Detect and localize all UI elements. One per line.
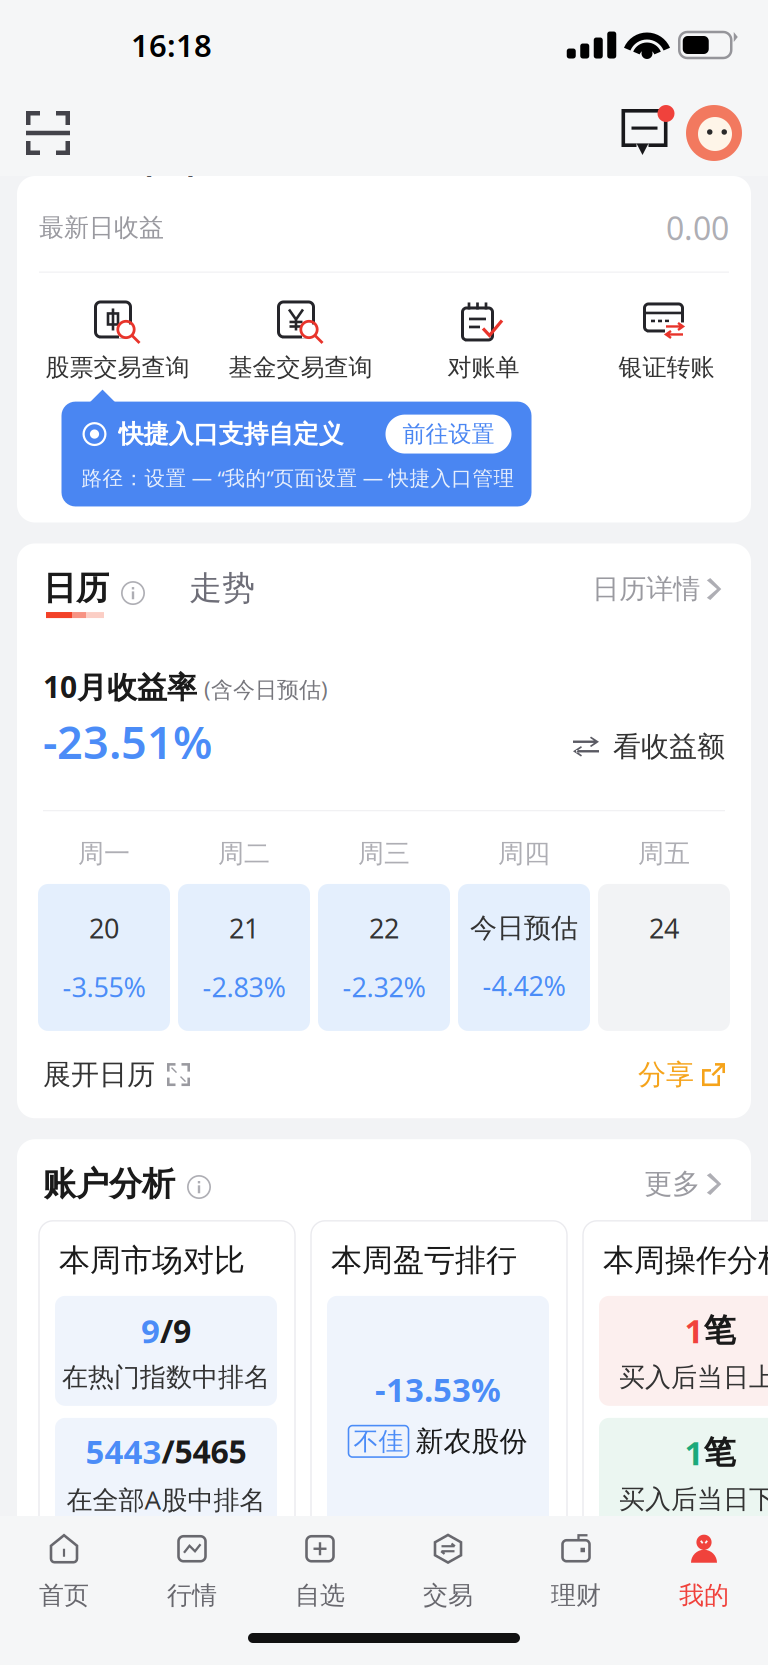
staticText: /5465	[161, 1429, 246, 1473]
staticText: 周一	[78, 837, 130, 870]
staticText: (含今日预估)	[204, 674, 328, 704]
button[interactable]: 首页	[0, 1528, 128, 1616]
staticText: 5443	[85, 1429, 161, 1474]
staticText: 笔	[703, 1432, 735, 1473]
staticText: 10月收益率	[43, 666, 197, 707]
staticText: 16:18	[131, 24, 212, 66]
staticText: 走势	[189, 567, 255, 609]
staticText: 理财	[551, 1580, 601, 1611]
staticText: 周三	[358, 837, 410, 870]
staticText: 基金交易查询	[228, 352, 372, 383]
button[interactable]: 21	[178, 884, 310, 1031]
button[interactable]: 对账单	[392, 295, 575, 389]
staticText: 展开日历	[43, 1057, 155, 1092]
staticText: 9	[141, 1308, 160, 1353]
button[interactable]: 银证转账	[575, 295, 758, 389]
staticText: 日历详情	[592, 572, 700, 606]
staticText: 周五	[638, 837, 690, 870]
button[interactable]: 看收益额	[573, 729, 725, 772]
staticText: /9	[160, 1309, 191, 1352]
staticText: 本周市场对比	[59, 1241, 245, 1280]
staticText: 0.00	[649, 126, 729, 181]
staticText: -23.51%	[43, 711, 212, 772]
staticText: 行情	[167, 1580, 217, 1611]
staticText: 快捷入口支持自定义	[118, 418, 343, 450]
staticText: 0.00	[666, 206, 729, 250]
staticText: 银证转账	[618, 352, 714, 383]
staticText: 买入后当日上涨	[619, 1361, 768, 1394]
staticText: 在热门指数中排名	[62, 1361, 270, 1394]
button[interactable]: 更多	[644, 1166, 725, 1202]
staticText: 分享	[638, 1057, 694, 1092]
button[interactable]: 基金交易查询	[209, 295, 392, 389]
staticText: 24	[649, 910, 679, 946]
staticText: 22	[369, 910, 399, 946]
staticText: 本周盈亏排行	[331, 1241, 517, 1280]
staticText: 更多	[644, 1166, 700, 1202]
button[interactable]: 24	[598, 884, 730, 1031]
staticText: 日历	[43, 567, 109, 609]
staticText: 看收益额	[613, 729, 725, 764]
staticText: 首页	[39, 1580, 89, 1611]
staticText: -13.53%	[375, 1367, 501, 1412]
staticText: 本周操作分析	[603, 1241, 768, 1280]
staticText: 前往设置	[402, 420, 494, 449]
staticText: 20	[89, 910, 119, 946]
staticText: 对账单	[447, 352, 519, 383]
button[interactable]: 交易	[384, 1528, 512, 1616]
staticText: 交易	[423, 1580, 473, 1611]
button[interactable]: 消息	[618, 103, 678, 163]
button[interactable]: 我的账户	[678, 103, 750, 163]
staticText: 1	[684, 1430, 703, 1475]
button[interactable]: 日历详情	[592, 572, 725, 618]
button[interactable]: 22	[318, 884, 450, 1031]
staticText: 自选	[295, 1580, 345, 1611]
button[interactable]: 前往设置	[385, 415, 511, 454]
button[interactable]: 我的	[640, 1528, 768, 1616]
staticText: 总资产(元)	[39, 135, 199, 181]
staticText: 21	[229, 910, 259, 946]
staticText: 新农股份	[415, 1424, 527, 1459]
staticText: 最新日收益	[39, 212, 164, 243]
button[interactable]: 展开日历	[43, 1057, 190, 1092]
staticText: 路径：设置 — “我的”页面设置 — 快捷入口管理	[81, 464, 514, 491]
staticText: 买入后当日下跌	[619, 1483, 768, 1516]
button[interactable]: 行情	[128, 1528, 256, 1616]
button[interactable]: 走势	[145, 567, 255, 618]
staticText: 1	[684, 1308, 703, 1353]
staticText: 周二	[218, 837, 270, 870]
button[interactable]: 理财	[512, 1528, 640, 1616]
staticText: -4.42%	[482, 967, 565, 1004]
staticText: 笔	[703, 1310, 735, 1351]
button[interactable]: 扫一扫	[16, 101, 80, 165]
button[interactable]: 日历	[43, 567, 109, 618]
button[interactable]: 今日预估	[458, 884, 590, 1031]
staticText: -2.83%	[202, 968, 285, 1005]
button[interactable]: 股票交易查询	[26, 295, 209, 389]
staticText: -3.55%	[62, 968, 145, 1005]
staticText: 在全部A股中排名	[66, 1482, 265, 1517]
button[interactable]: 自选	[256, 1528, 384, 1616]
staticText: 我的	[679, 1580, 729, 1611]
button[interactable]: 20	[38, 884, 170, 1031]
staticText: 股票交易查询	[45, 352, 189, 383]
button[interactable]: 分享	[638, 1057, 725, 1092]
staticText: -2.32%	[342, 968, 425, 1005]
staticText: 周四	[498, 837, 550, 870]
staticText: 今日预估	[470, 911, 578, 945]
staticText: 不佳	[353, 1426, 403, 1457]
staticText: 账户分析	[43, 1163, 175, 1205]
